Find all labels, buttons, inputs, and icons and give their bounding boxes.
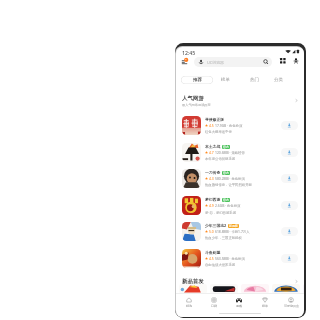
staticText: 618.8MB · 卡牌1.7万人 bbox=[215, 229, 250, 234]
button[interactable]: UC浏览器 bbox=[194, 57, 272, 67]
button[interactable]: 游戏 bbox=[226, 294, 252, 310]
staticText: 可爱潮品会 bbox=[284, 304, 299, 308]
button[interactable]: Download bbox=[281, 201, 298, 210]
button[interactable]: Download bbox=[281, 121, 298, 130]
button[interactable]: Menu bbox=[180, 56, 191, 67]
staticText: 分类 bbox=[274, 77, 283, 83]
staticText: 梦幻西游 bbox=[205, 197, 221, 202]
staticText: 4.9 bbox=[209, 203, 214, 208]
button[interactable] bbox=[210, 284, 238, 294]
staticText: 4.5 bbox=[209, 123, 214, 128]
staticText: 热血少年，三国正版授权 bbox=[205, 236, 242, 240]
staticText: 热血激情传奇，让平民烈焰开服 bbox=[205, 183, 252, 187]
button[interactable]: 热门 bbox=[247, 76, 262, 84]
button[interactable]: Profile bbox=[291, 56, 301, 66]
staticText: 斗鱼剑盟 bbox=[205, 250, 221, 255]
staticText: 热门 bbox=[250, 77, 259, 83]
staticText: 新品首发 bbox=[182, 278, 204, 285]
staticText: 4.5 bbox=[209, 256, 214, 261]
button[interactable]: 榜单 bbox=[252, 294, 278, 310]
staticText: 人气网游 bbox=[182, 95, 204, 102]
staticText: 12:45 bbox=[182, 49, 196, 56]
staticText: 官方 bbox=[223, 145, 229, 149]
staticText: 5.0 bbox=[209, 229, 214, 234]
staticText: 游戏 bbox=[236, 304, 242, 308]
staticText: 最人气网络游戏推荐 bbox=[182, 103, 211, 107]
staticText: 少年三国志2 bbox=[205, 223, 227, 228]
staticText: 新游榜 bbox=[229, 224, 238, 228]
button[interactable]: 寻侠修正版 bbox=[176, 112, 304, 139]
button[interactable]: 精选 bbox=[176, 294, 201, 310]
staticText: 红包大爆率送不停 bbox=[205, 130, 232, 134]
staticText: 梦·启，梦幻西游手游 bbox=[205, 210, 236, 215]
button[interactable] bbox=[303, 284, 304, 294]
button[interactable]: Download bbox=[281, 227, 298, 236]
button[interactable]: Download bbox=[281, 254, 298, 263]
staticText: 563.5MB · 角色扮演 bbox=[215, 256, 245, 261]
button[interactable]: 一刀传奇 bbox=[176, 165, 304, 192]
staticText: UC浏览器 bbox=[207, 60, 224, 65]
staticText: 2.6GB · 角色扮演 bbox=[215, 203, 241, 208]
staticText: 580.2MB · 角色扮演 bbox=[215, 176, 245, 181]
staticText: 自由仙侠大世界手游 bbox=[205, 263, 236, 267]
button[interactable]: Download bbox=[281, 174, 298, 183]
staticText: 精选 bbox=[186, 304, 192, 308]
staticText: 本年度公信品牌手游 bbox=[205, 157, 236, 161]
staticText: 120.6MB · 策略经营 bbox=[215, 150, 245, 155]
button[interactable]: 梦幻西游 bbox=[176, 192, 304, 219]
staticText: 口碑 bbox=[211, 304, 217, 308]
staticText: 榜单 bbox=[262, 304, 268, 308]
button[interactable]: 斗鱼剑盟 bbox=[176, 245, 304, 272]
staticText: 推荐 bbox=[193, 77, 202, 83]
button[interactable] bbox=[272, 284, 300, 294]
staticText: 本土之战 bbox=[205, 144, 221, 149]
staticText: 官方 bbox=[223, 198, 229, 202]
button[interactable]: 少年三国志2 bbox=[176, 218, 304, 245]
button[interactable]: 人气网游 bbox=[176, 93, 304, 108]
staticText: 4.7 bbox=[209, 150, 214, 155]
staticText: 榜单 bbox=[221, 77, 230, 83]
button[interactable]: 新品首发 bbox=[176, 276, 304, 286]
button[interactable] bbox=[241, 284, 269, 294]
button[interactable]: 口碑 bbox=[201, 294, 226, 310]
staticText: 17.9GB · 角色扮演 bbox=[215, 123, 243, 128]
button[interactable]: 榜单 bbox=[218, 76, 233, 84]
button[interactable] bbox=[179, 284, 207, 294]
button[interactable]: 本土之战 bbox=[176, 139, 304, 166]
staticText: 寻侠修正版 bbox=[205, 117, 224, 122]
button[interactable]: Download bbox=[281, 148, 298, 157]
button[interactable]: 推荐 bbox=[181, 76, 213, 84]
button[interactable]: 可爱潮品会 bbox=[278, 294, 304, 310]
button[interactable]: Apps bbox=[278, 56, 288, 66]
staticText: 4.3 bbox=[209, 176, 214, 181]
button[interactable]: 分类 bbox=[271, 76, 286, 84]
staticText: 一刀传奇 bbox=[205, 170, 221, 175]
staticText: 官方 bbox=[223, 171, 229, 175]
